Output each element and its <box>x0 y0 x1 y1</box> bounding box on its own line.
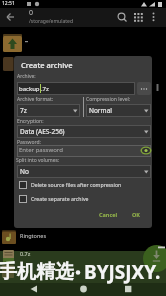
button[interactable] <box>0 8 166 27</box>
button[interactable] <box>17 125 151 138</box>
staticText: Compression level: <box>86 96 131 103</box>
staticText: Archive: <box>17 73 36 80</box>
button[interactable] <box>95 209 123 222</box>
staticText: 0.7z <box>20 250 31 257</box>
staticText: Create separate archive <box>31 195 89 202</box>
staticText: OK <box>132 211 141 218</box>
staticText: .7z <box>41 85 49 93</box>
staticText: backup <box>19 85 40 93</box>
staticText: Split into volumes: <box>16 157 60 164</box>
staticText: Data (AES-256) <box>20 127 65 136</box>
button[interactable] <box>131 10 144 23</box>
staticText: 手机精选 <box>0 260 74 284</box>
staticText: Ringtones <box>20 232 47 239</box>
button[interactable] <box>24 283 44 296</box>
staticText: 0 <box>29 8 34 18</box>
button[interactable] <box>17 82 135 95</box>
button[interactable] <box>115 10 128 23</box>
button[interactable] <box>73 283 93 296</box>
staticText: Normal <box>89 106 112 115</box>
button[interactable] <box>17 145 151 157</box>
staticText: Create archive <box>21 60 73 70</box>
button[interactable] <box>129 209 145 222</box>
staticText: Enter password <box>19 146 63 154</box>
staticText: Archive format: <box>17 96 54 103</box>
staticText: Encryption: <box>17 118 44 125</box>
button[interactable] <box>19 195 27 203</box>
button[interactable] <box>17 165 151 178</box>
staticText: BYJSJXY. <box>84 259 161 285</box>
staticText: No <box>20 167 29 176</box>
staticText: 7z <box>20 106 27 115</box>
button[interactable] <box>118 283 138 296</box>
button[interactable] <box>143 245 166 272</box>
staticText: Password: <box>17 139 41 146</box>
button[interactable] <box>17 104 80 117</box>
button[interactable] <box>86 104 151 117</box>
staticText: Delete source files after compression <box>31 181 122 188</box>
staticText: Cancel <box>99 211 118 218</box>
staticText: 12:51 <box>2 0 15 7</box>
staticText: /storage/emulated <box>29 18 73 25</box>
button[interactable] <box>148 10 159 21</box>
button[interactable] <box>19 181 27 189</box>
button[interactable] <box>137 82 151 95</box>
